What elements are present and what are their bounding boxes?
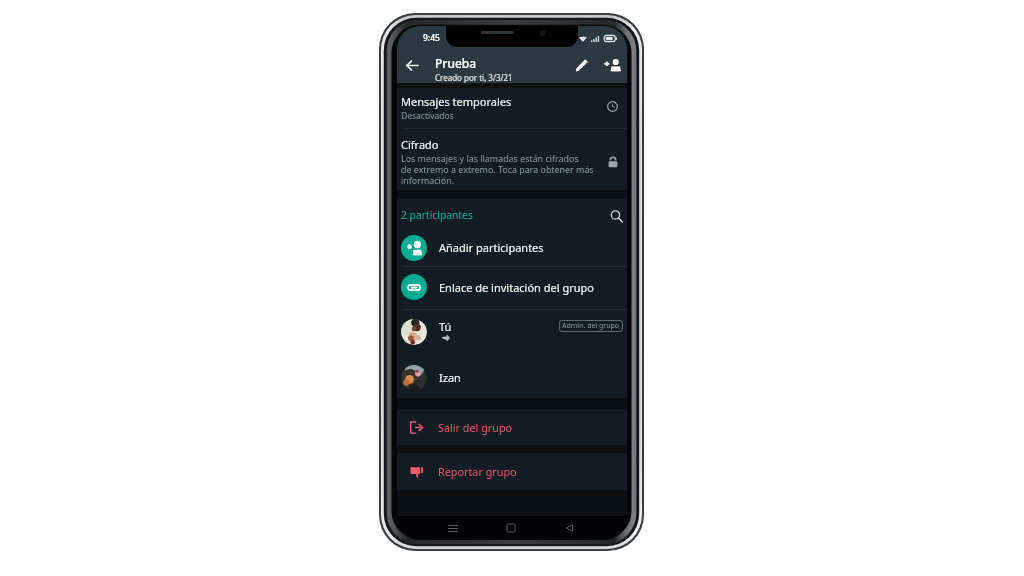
button[interactable]: Back bbox=[557, 516, 581, 540]
staticText: Añadir participantes bbox=[439, 240, 544, 255]
staticText: Izan bbox=[439, 370, 461, 385]
staticText: Enlace de invitación del grupo bbox=[439, 280, 594, 295]
staticText: Tú bbox=[439, 319, 452, 334]
button[interactable]: Enlace de invitación del grupo bbox=[397, 266, 627, 308]
button[interactable]: Añadir participantes bbox=[397, 229, 627, 266]
button[interactable]: Recent apps bbox=[441, 516, 465, 540]
staticText: Prueba bbox=[435, 55, 477, 71]
button[interactable]: Salir del grupo bbox=[397, 409, 627, 445]
staticText: Los mensajes y las llamadas están cifrad… bbox=[401, 152, 579, 164]
button[interactable]: Izan bbox=[397, 356, 627, 399]
button[interactable]: Cifrado bbox=[397, 129, 627, 190]
button[interactable]: Mensajes temporales bbox=[397, 88, 627, 128]
staticText: Salir del grupo bbox=[438, 420, 513, 435]
staticText: Cifrado bbox=[401, 137, 439, 152]
staticText: información. bbox=[401, 174, 455, 186]
button[interactable]: Back bbox=[400, 47, 424, 83]
staticText: 9:45 bbox=[423, 32, 440, 44]
button[interactable]: Tú bbox=[397, 309, 627, 355]
staticText: Mensajes temporales bbox=[401, 94, 512, 109]
button[interactable]: Reportar grupo bbox=[397, 453, 627, 490]
button[interactable]: Search participants bbox=[606, 206, 626, 226]
staticText: 2 participantes bbox=[401, 208, 473, 222]
staticText: Reportar grupo bbox=[438, 464, 517, 479]
button[interactable]: Add participant bbox=[600, 47, 624, 83]
staticText: Desactivados bbox=[401, 110, 454, 122]
staticText: Creado por ti, 3/3/21 bbox=[435, 72, 513, 83]
button[interactable]: Edit group bbox=[570, 47, 592, 83]
staticText: Admin. del grupo bbox=[562, 321, 620, 331]
staticText: de extremo a extremo. Toca para obtener … bbox=[401, 163, 594, 175]
button[interactable]: Home bbox=[499, 516, 523, 540]
